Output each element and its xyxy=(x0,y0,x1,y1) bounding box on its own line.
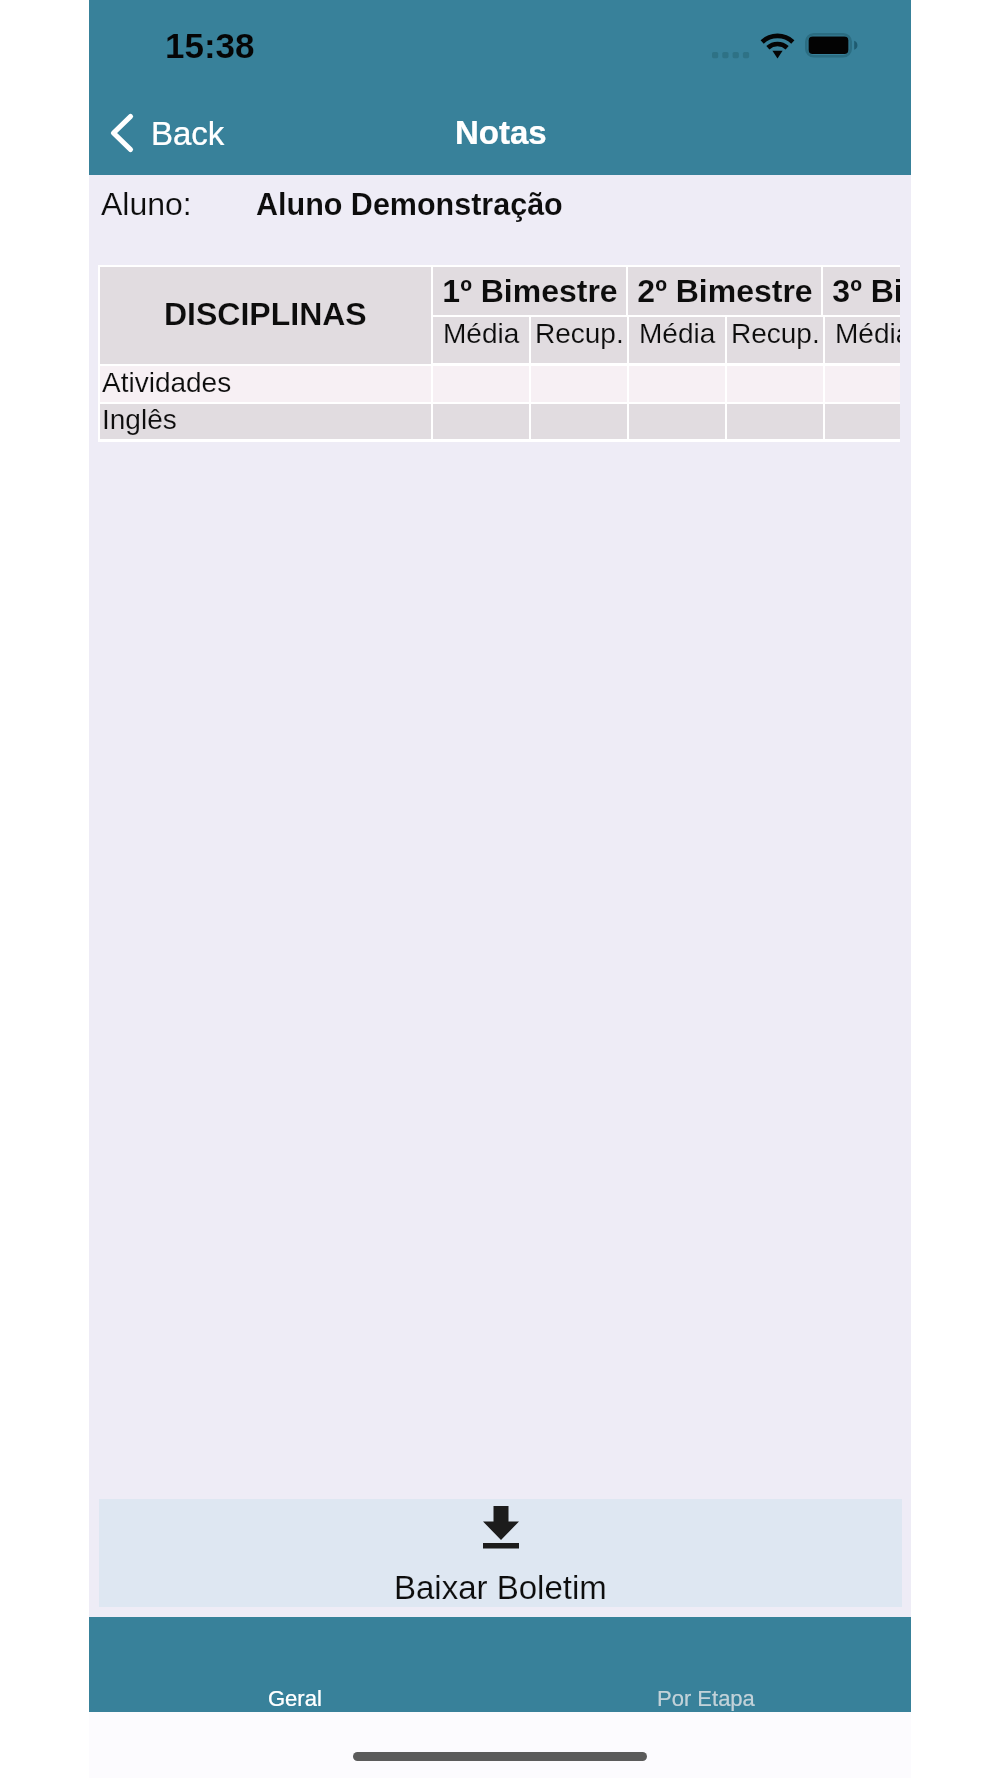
staticText: Geral xyxy=(268,1686,322,1711)
staticText: Aluno Demonstração xyxy=(256,187,563,221)
staticText: Média xyxy=(443,318,520,349)
staticText: Recup. xyxy=(535,318,624,349)
staticText: 3º Bimestre xyxy=(832,273,900,309)
staticText: 2º Bimestre xyxy=(637,273,813,309)
button[interactable]: Por Etapa xyxy=(500,1617,911,1712)
staticText: Inglês xyxy=(102,404,177,435)
staticText: 1º Bimestre xyxy=(442,273,618,309)
staticText: Aluno: xyxy=(101,186,192,222)
staticText: Baixar Boletim xyxy=(394,1569,607,1606)
staticText: Back xyxy=(151,115,225,152)
button[interactable]: Baixar Boletim xyxy=(99,1499,902,1607)
staticText: Média xyxy=(639,318,716,349)
staticText: Por Etapa xyxy=(657,1686,755,1711)
staticText: DISCIPLINAS xyxy=(164,296,367,332)
staticText: 15:38 xyxy=(165,26,255,65)
button[interactable]: Back xyxy=(89,104,243,162)
staticText: Notas xyxy=(455,114,547,151)
staticText: Recup. xyxy=(731,318,820,349)
button[interactable]: Geral xyxy=(89,1617,500,1712)
other: Baixar Boletim xyxy=(483,1506,519,1557)
staticText: Média xyxy=(835,318,900,349)
staticText: Atividades xyxy=(102,367,232,398)
